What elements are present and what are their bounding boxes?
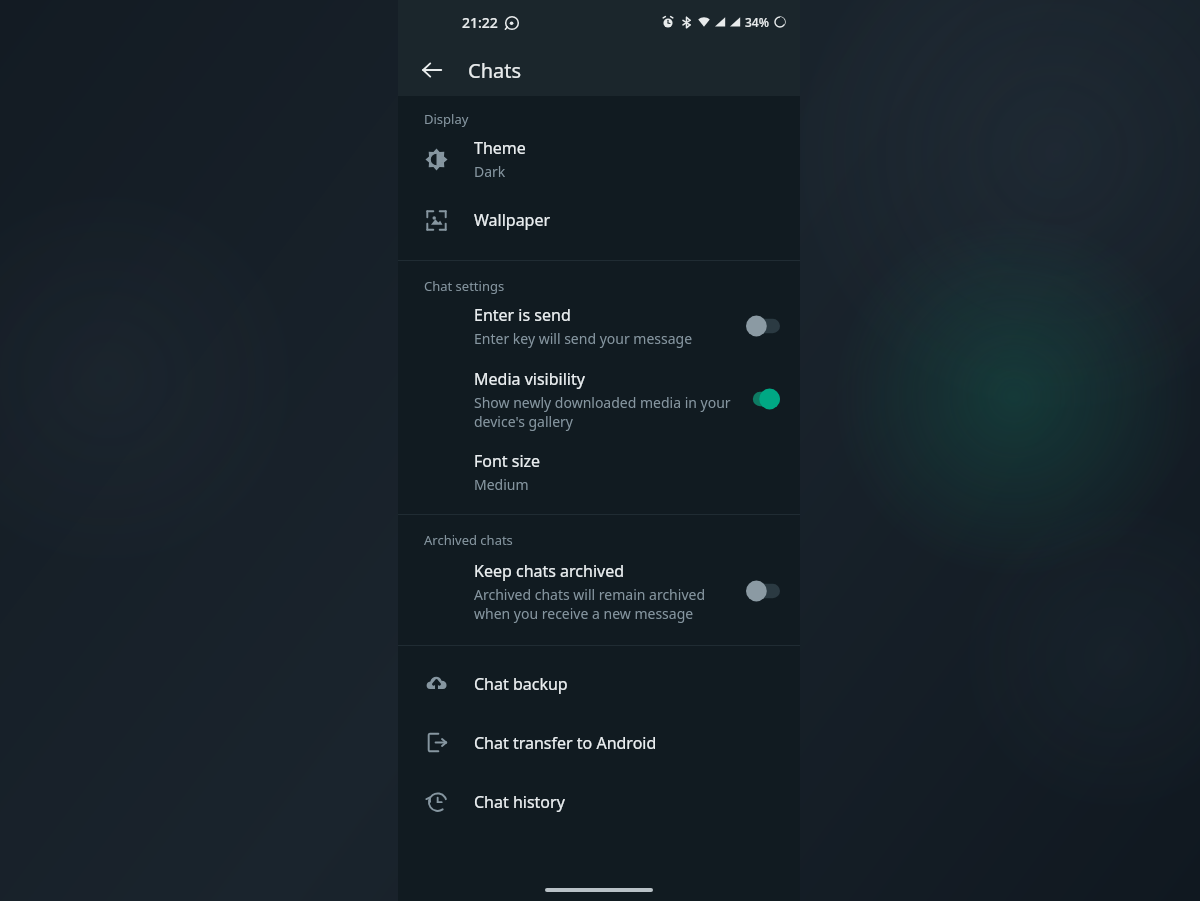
staticText: 34% (745, 14, 769, 30)
button[interactable]: Enter is send (398, 295, 800, 357)
staticText: Archived chats (424, 531, 513, 549)
button[interactable]: Theme (398, 128, 800, 190)
staticText: Archived chats will remain archived when… (474, 585, 705, 623)
staticText: Theme (474, 137, 526, 159)
button[interactable]: Media visibility (398, 357, 800, 441)
staticText: Chat backup (474, 673, 568, 695)
staticText: Enter is send (474, 304, 571, 326)
staticText: Chat transfer to Android (474, 732, 657, 754)
staticText: Font size (474, 450, 541, 472)
staticText: Medium (474, 475, 529, 494)
button[interactable]: Font size (398, 441, 800, 503)
staticText: Chat settings (424, 277, 505, 295)
button[interactable]: Keep chats archived (398, 549, 800, 633)
staticText: Display (424, 110, 469, 128)
staticText: Chat history (474, 791, 565, 813)
staticText: Chats (468, 57, 522, 84)
staticText: Keep chats archived (474, 560, 625, 582)
button[interactable]: Chat backup (398, 654, 800, 713)
staticText: Show newly downloaded media in your devi… (474, 393, 731, 431)
button[interactable]: Wallpaper (398, 190, 800, 250)
button[interactable]: Chat transfer to Android (398, 713, 800, 772)
staticText: Dark (474, 162, 506, 181)
staticText: 21:22 (462, 13, 498, 32)
button[interactable]: Chat history (398, 772, 800, 831)
staticText: Media visibility (474, 368, 585, 390)
staticText: Wallpaper (474, 209, 551, 231)
button[interactable]: Back (410, 48, 454, 92)
staticText: Enter key will send your message (474, 329, 693, 348)
